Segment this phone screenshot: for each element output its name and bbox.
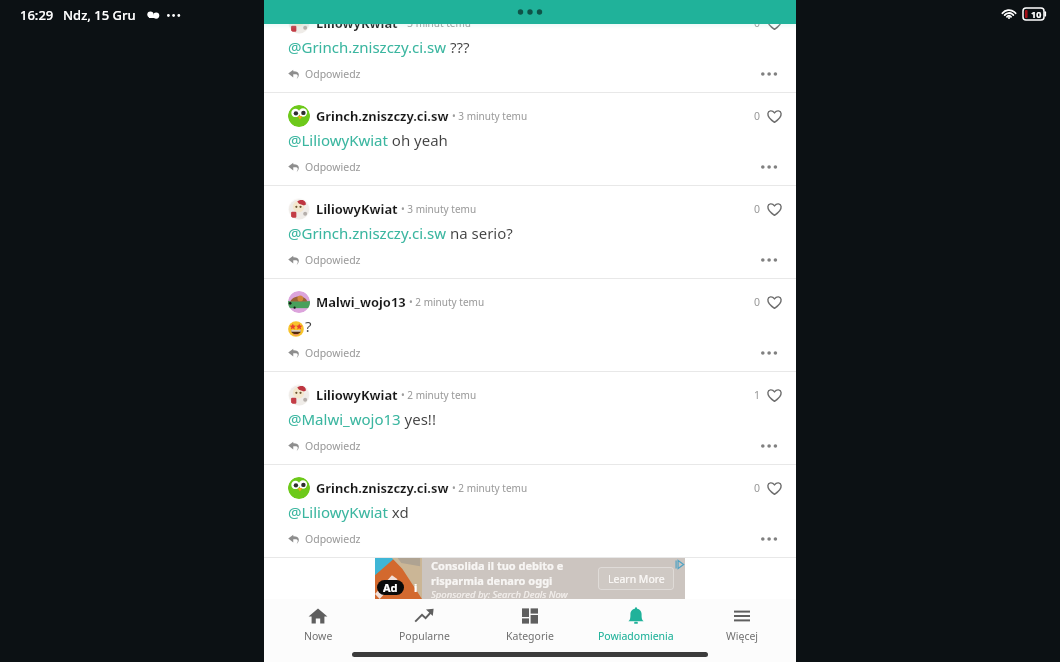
button[interactable]: More (756, 158, 782, 176)
staticText: Odpowiedz (305, 160, 361, 174)
staticText: 0 (754, 16, 761, 30)
button[interactable]: Odpowiedz (288, 439, 361, 453)
staticText: 0 (754, 202, 761, 216)
staticText: 10 (1031, 8, 1042, 20)
button[interactable]: Więcej (690, 599, 794, 646)
button[interactable]: Odpowiedz (288, 253, 361, 267)
button[interactable]: Powiadomienia (584, 599, 688, 646)
staticText: Odpowiedz (305, 532, 361, 546)
staticText: risparmia denaro oggi (431, 573, 553, 588)
button[interactable]: Malwi_wojo13 (264, 279, 796, 372)
staticText: @Malwi_wojo13 yes!! (288, 409, 436, 429)
button[interactable]: Like (754, 109, 782, 123)
button[interactable]: Odpowiedz (288, 532, 361, 546)
staticText: • 3 minuty temu (401, 202, 477, 216)
staticText: Consolida il tuo debito e (431, 558, 564, 573)
staticText: Learn More (608, 572, 665, 586)
button[interactable]: LiliowyKwiat (264, 0, 796, 93)
button[interactable]: More (756, 251, 782, 269)
button[interactable]: Like (754, 481, 782, 495)
button[interactable]: Like (754, 202, 782, 216)
button[interactable]: Nowe (266, 599, 370, 646)
button[interactable]: More (756, 65, 782, 83)
staticText: LiliowyKwiat (316, 200, 398, 218)
staticText: • 3 minut temu (401, 16, 471, 30)
staticText: Grinch.zniszczy.ci.sw (316, 107, 449, 125)
staticText: • 3 minuty temu (452, 109, 528, 123)
staticText: @Grinch.zniszczy.ci.sw ??? (288, 37, 470, 57)
button[interactable]: Grinch.zniszczy.ci.sw (264, 465, 796, 558)
button[interactable]: Odpowiedz (288, 346, 361, 360)
button[interactable]: Kategorie (478, 599, 582, 646)
staticText: • 2 minuty temu (409, 295, 485, 309)
staticText: Odpowiedz (305, 346, 361, 360)
button[interactable]: More (756, 530, 782, 548)
staticText: Odpowiedz (305, 253, 361, 267)
staticText: 1 (754, 388, 761, 402)
button[interactable]: Like (754, 295, 782, 309)
staticText: i (414, 580, 418, 595)
staticText: @Grinch.zniszczy.ci.sw na serio? (288, 223, 513, 243)
button[interactable]: Learn More (598, 567, 674, 590)
staticText: LiliowyKwiat (316, 386, 398, 404)
button[interactable]: More options (508, 0, 552, 24)
staticText: 16:29 (20, 6, 54, 24)
staticText: @LiliowyKwiat xd (288, 502, 409, 522)
staticText: Malwi_wojo13 (316, 293, 406, 311)
staticText: • 2 minuty temu (401, 388, 477, 402)
staticText: 0 (754, 481, 761, 495)
staticText: Odpowiedz (305, 439, 361, 453)
staticText: ? (305, 316, 312, 336)
button[interactable]: LiliowyKwiat (264, 186, 796, 279)
button[interactable]: LiliowyKwiat (264, 372, 796, 465)
staticText: Odpowiedz (305, 67, 361, 81)
staticText: Ad (383, 580, 398, 595)
staticText: Sponsored by: Search Deals Now (431, 588, 568, 599)
staticText: Grinch.zniszczy.ci.sw (316, 479, 449, 497)
button[interactable]: Popularne (372, 599, 476, 646)
button[interactable]: More (756, 344, 782, 362)
staticText: @LiliowyKwiat oh yeah (288, 130, 448, 150)
staticText: Więcej (726, 629, 759, 643)
button[interactable]: Odpowiedz (288, 160, 361, 174)
staticText: Nowe (304, 629, 333, 643)
button[interactable]: Grinch.zniszczy.ci.sw (264, 93, 796, 186)
staticText: Ndz, 15 Gru (63, 6, 136, 24)
button[interactable]: Odpowiedz (288, 67, 361, 81)
staticText: Kategorie (506, 629, 554, 643)
staticText: 0 (754, 295, 761, 309)
staticText: Powiadomienia (598, 629, 674, 643)
staticText: Popularne (399, 629, 450, 643)
button[interactable]: Like (754, 388, 782, 402)
staticText: • 2 minuty temu (452, 481, 528, 495)
staticText: 0 (754, 109, 761, 123)
staticText: LiliowyKwiat (316, 14, 398, 32)
button[interactable]: More (756, 437, 782, 455)
button[interactable]: Ad (375, 558, 685, 599)
button[interactable]: Like (754, 16, 782, 30)
